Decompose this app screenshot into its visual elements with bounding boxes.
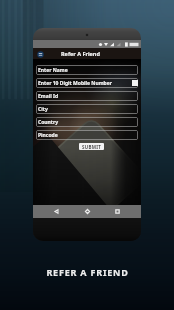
staticText: SUBMIT bbox=[82, 144, 102, 150]
button[interactable]: Back bbox=[50, 205, 63, 218]
staticText: Email Id bbox=[38, 93, 59, 100]
staticText: Country bbox=[38, 119, 59, 126]
staticText: Enter 10 Digit Mobile Number bbox=[38, 80, 112, 87]
button[interactable]: Menu bbox=[36, 50, 44, 58]
button[interactable]: City bbox=[36, 104, 138, 114]
staticText: Enter Name bbox=[38, 67, 68, 74]
button[interactable]: Enter Name bbox=[36, 65, 138, 75]
button[interactable]: Email Id bbox=[36, 91, 138, 101]
staticText: Pincode bbox=[38, 132, 58, 139]
staticText: City bbox=[38, 106, 48, 113]
button[interactable]: SUBMIT bbox=[79, 143, 104, 150]
button[interactable]: Pincode bbox=[36, 130, 138, 140]
button[interactable]: Country bbox=[36, 117, 138, 127]
staticText: Refer A Friend bbox=[61, 50, 100, 57]
button[interactable]: Recents bbox=[111, 205, 124, 218]
staticText: REFER A FRIEND bbox=[46, 266, 129, 278]
button[interactable]: Enter 10 Digit Mobile Number bbox=[36, 78, 138, 88]
button[interactable]: Home bbox=[81, 205, 94, 218]
